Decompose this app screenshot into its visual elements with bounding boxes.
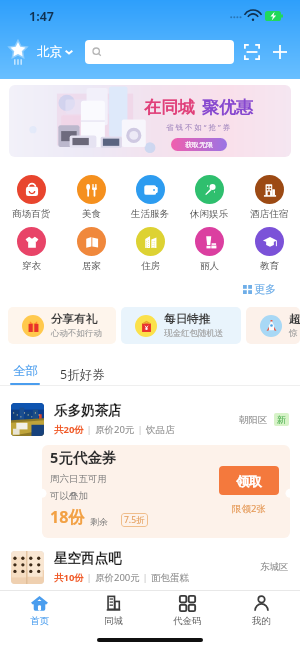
staticText: 共20份 bbox=[54, 423, 84, 436]
staticText: 获取无限 bbox=[185, 140, 213, 149]
staticText: 代金码 bbox=[173, 615, 202, 627]
button[interactable]: 乐多奶茶店 bbox=[0, 402, 300, 436]
button[interactable]: 同城 bbox=[78, 595, 148, 627]
button[interactable]: 星空西点吧 bbox=[0, 550, 300, 584]
button[interactable]: 居家 bbox=[63, 227, 119, 272]
staticText: 商场百货 bbox=[12, 208, 50, 220]
button[interactable]: 穿衣 bbox=[3, 227, 59, 272]
staticText: 同城 bbox=[104, 615, 123, 627]
button[interactable]: 代金码 bbox=[152, 595, 222, 627]
staticText: 首页 bbox=[30, 615, 49, 627]
button[interactable]: 全部 bbox=[10, 363, 40, 385]
staticText: 更多 bbox=[254, 282, 276, 296]
staticText: 住房 bbox=[141, 260, 160, 272]
staticText: 惊 bbox=[289, 328, 298, 339]
staticText: 星空西点吧 bbox=[54, 550, 122, 567]
staticText: 我的 bbox=[252, 615, 271, 627]
staticText: 在同城 bbox=[144, 97, 195, 118]
button[interactable]: 酒店住宿 bbox=[241, 175, 297, 220]
staticText: | bbox=[135, 423, 146, 436]
button[interactable]: 丽人 bbox=[181, 227, 237, 272]
staticText: 教育 bbox=[260, 260, 279, 272]
staticText: 饮品店 bbox=[146, 424, 175, 436]
button[interactable]: 超 bbox=[246, 307, 300, 344]
staticText: 共10份 bbox=[54, 571, 84, 584]
button[interactable]: 生活服务 bbox=[122, 175, 178, 220]
button[interactable]: 分享有礼 bbox=[8, 307, 116, 344]
button[interactable]: Scan bbox=[242, 42, 262, 62]
staticText: 朝阳区 bbox=[239, 414, 268, 426]
button[interactable]: 5折好券 bbox=[56, 364, 109, 385]
button[interactable]: 更多 bbox=[241, 280, 278, 298]
button[interactable]: 领取 bbox=[219, 466, 279, 495]
staticText: 1:47 bbox=[29, 8, 54, 25]
staticText: 现金红包随机送 bbox=[164, 328, 224, 339]
staticText: 7.5折 bbox=[124, 514, 145, 526]
staticText: 原价20元 bbox=[95, 423, 135, 436]
button[interactable]: 我的 bbox=[226, 595, 296, 627]
button[interactable] bbox=[85, 40, 234, 64]
staticText: 生活服务 bbox=[131, 208, 169, 220]
staticText: 可以叠加 bbox=[50, 490, 88, 502]
staticText: 每日特推 bbox=[164, 312, 210, 326]
button[interactable]: 住房 bbox=[122, 227, 178, 272]
staticText: 丽人 bbox=[200, 260, 219, 272]
button[interactable]: 首页 bbox=[4, 595, 74, 627]
button[interactable]: 北京 bbox=[37, 40, 73, 64]
staticText: 周六日五可用 bbox=[50, 473, 107, 485]
staticText: 美食 bbox=[82, 208, 101, 220]
staticText: 新 bbox=[277, 414, 286, 425]
staticText: 居家 bbox=[82, 260, 101, 272]
staticText: | bbox=[140, 571, 151, 584]
staticText: 超 bbox=[289, 312, 300, 326]
staticText: 18份 bbox=[50, 506, 85, 528]
button[interactable]: Add bbox=[272, 44, 288, 60]
button[interactable]: 5元代金券 bbox=[42, 445, 290, 538]
staticText: 穿衣 bbox=[22, 260, 41, 272]
staticText: | bbox=[84, 571, 95, 584]
staticText: 聚优惠 bbox=[202, 97, 253, 118]
staticText: 5元代金券 bbox=[50, 447, 117, 467]
staticText: 领取 bbox=[236, 473, 262, 489]
staticText: 乐多奶茶店 bbox=[54, 402, 122, 419]
staticText: 分享有礼 bbox=[51, 312, 97, 326]
button[interactable]: 美食 bbox=[63, 175, 119, 220]
staticText: 休闲娱乐 bbox=[190, 208, 228, 220]
staticText: 5折好券 bbox=[60, 366, 105, 383]
staticText: 省 钱 不 如 “ 抢 ” 券 bbox=[166, 122, 231, 132]
staticText: 限领2张 bbox=[232, 502, 266, 515]
button[interactable]: 在同城 bbox=[9, 85, 291, 157]
button[interactable]: 商场百货 bbox=[3, 175, 59, 220]
staticText: | bbox=[84, 423, 95, 436]
staticText: 北京 bbox=[37, 44, 62, 60]
staticText: 酒店住宿 bbox=[250, 208, 288, 220]
staticText: 全部 bbox=[13, 363, 38, 379]
button[interactable]: 教育 bbox=[241, 227, 297, 272]
staticText: 心动不如行动 bbox=[51, 328, 102, 339]
staticText: 面包蛋糕 bbox=[151, 572, 189, 584]
staticText: 东城区 bbox=[260, 561, 289, 573]
staticText: 原价200元 bbox=[95, 571, 140, 584]
button[interactable]: 休闲娱乐 bbox=[181, 175, 237, 220]
button[interactable]: 每日特推 bbox=[121, 307, 241, 344]
staticText: 剩余 bbox=[90, 516, 108, 527]
